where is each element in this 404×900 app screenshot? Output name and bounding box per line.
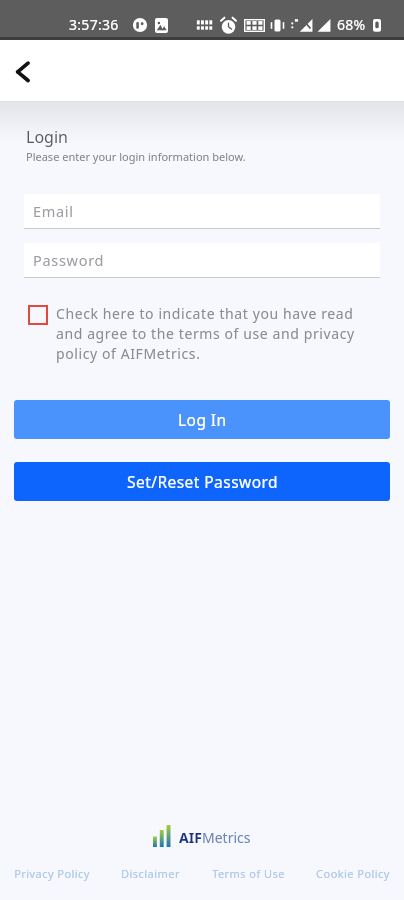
staticText: Set/Reset Password (127, 471, 278, 492)
staticText: Cookie Policy (316, 866, 390, 881)
staticText: Log In (178, 409, 227, 430)
staticText: Please enter your login information belo… (26, 149, 246, 164)
button[interactable]: Privacy Policy (14, 866, 90, 881)
staticText: 68% (337, 15, 366, 34)
staticText: Metrics (202, 828, 251, 847)
button[interactable]: Set/Reset Password (14, 462, 390, 501)
staticText: Password (33, 250, 105, 270)
staticText: Disclaimer (121, 866, 180, 881)
staticText: Login (26, 126, 68, 148)
button[interactable]: Terms of Use (212, 866, 285, 881)
staticText: Privacy Policy (14, 866, 90, 881)
button[interactable]: Cookie Policy (316, 866, 390, 881)
button[interactable]: Disclaimer (121, 866, 180, 881)
staticText: 3:57:36 (69, 15, 119, 34)
staticText: Terms of Use (212, 866, 285, 881)
staticText: AIF (179, 828, 202, 847)
button[interactable]: Password (24, 243, 380, 277)
button[interactable]: Log In (14, 400, 390, 439)
button[interactable]: Email (24, 194, 380, 228)
button[interactable]: Check here to indicate that you have rea… (28, 304, 360, 363)
staticText: Check here to indicate that you have rea… (56, 304, 360, 363)
button[interactable]: Back (9, 57, 37, 85)
staticText: Email (33, 201, 74, 221)
